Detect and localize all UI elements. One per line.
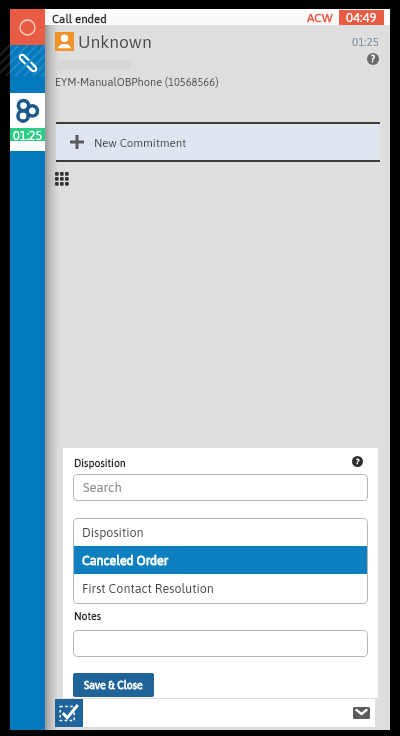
staticText: Disposition (82, 525, 144, 539)
staticText: 04:49 (346, 10, 377, 25)
staticText: First Contact Resolution (82, 581, 214, 595)
button[interactable]: Tasks (55, 699, 83, 727)
staticText: ? (371, 54, 376, 64)
staticText: Search (83, 480, 122, 495)
button[interactable]: Help (352, 456, 363, 467)
button[interactable]: New Commitment (56, 124, 380, 160)
button[interactable]: Search (73, 474, 368, 501)
staticText: Canceled Order (82, 553, 169, 567)
button[interactable]: Save & Close (73, 673, 154, 697)
staticText: Save & Close (84, 679, 143, 691)
staticText: New Commitment (94, 136, 187, 149)
button[interactable] (73, 630, 368, 657)
staticText: Unknown (78, 32, 152, 52)
staticText: ? (356, 457, 360, 466)
staticText: EYM-ManualOBPhone (10568566) (55, 76, 219, 89)
button[interactable]: End call (10, 9, 45, 45)
button[interactable]: Dialpad (55, 172, 70, 187)
button[interactable]: Messages (353, 707, 370, 719)
staticText: Call ended (52, 12, 107, 25)
button[interactable]: First Contact Resolution (73, 574, 368, 602)
button[interactable]: Hold (10, 45, 45, 76)
button[interactable]: Help (367, 53, 379, 65)
staticText: Notes (74, 610, 102, 622)
staticText: Disposition (74, 457, 126, 469)
button[interactable]: Canceled Order (73, 546, 368, 574)
staticText: 01:25 (352, 35, 379, 48)
staticText: ACW (307, 11, 333, 25)
staticText: 01:25 (13, 128, 43, 141)
button[interactable]: Disposition (73, 518, 368, 546)
button[interactable]: Contacts (10, 93, 45, 128)
